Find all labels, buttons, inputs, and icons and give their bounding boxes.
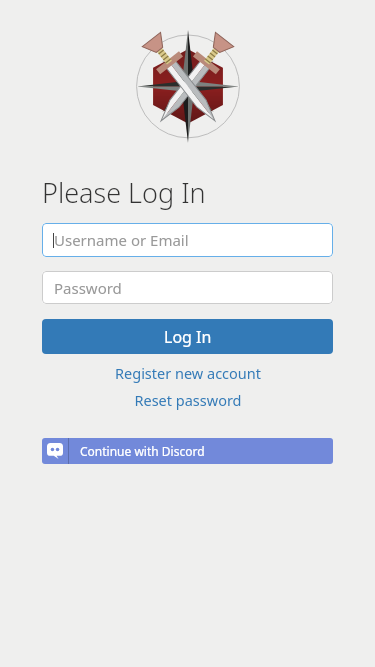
staticText: Username or Email: [54, 230, 189, 250]
staticText: Please Log In: [42, 174, 206, 211]
staticText: Continue with Discord: [80, 443, 205, 459]
button[interactable]: Password: [42, 271, 333, 304]
button[interactable]: Username or Email: [42, 223, 333, 257]
staticText: Password: [54, 278, 122, 298]
staticText: Log In: [164, 326, 212, 348]
button[interactable]: Log In: [42, 319, 333, 354]
button[interactable]: Reset password: [0, 390, 375, 410]
button[interactable]: Register new account: [0, 363, 375, 383]
staticText: Register new account: [115, 363, 261, 383]
button[interactable]: Continue with Discord: [42, 438, 333, 464]
staticText: Reset password: [134, 390, 242, 410]
